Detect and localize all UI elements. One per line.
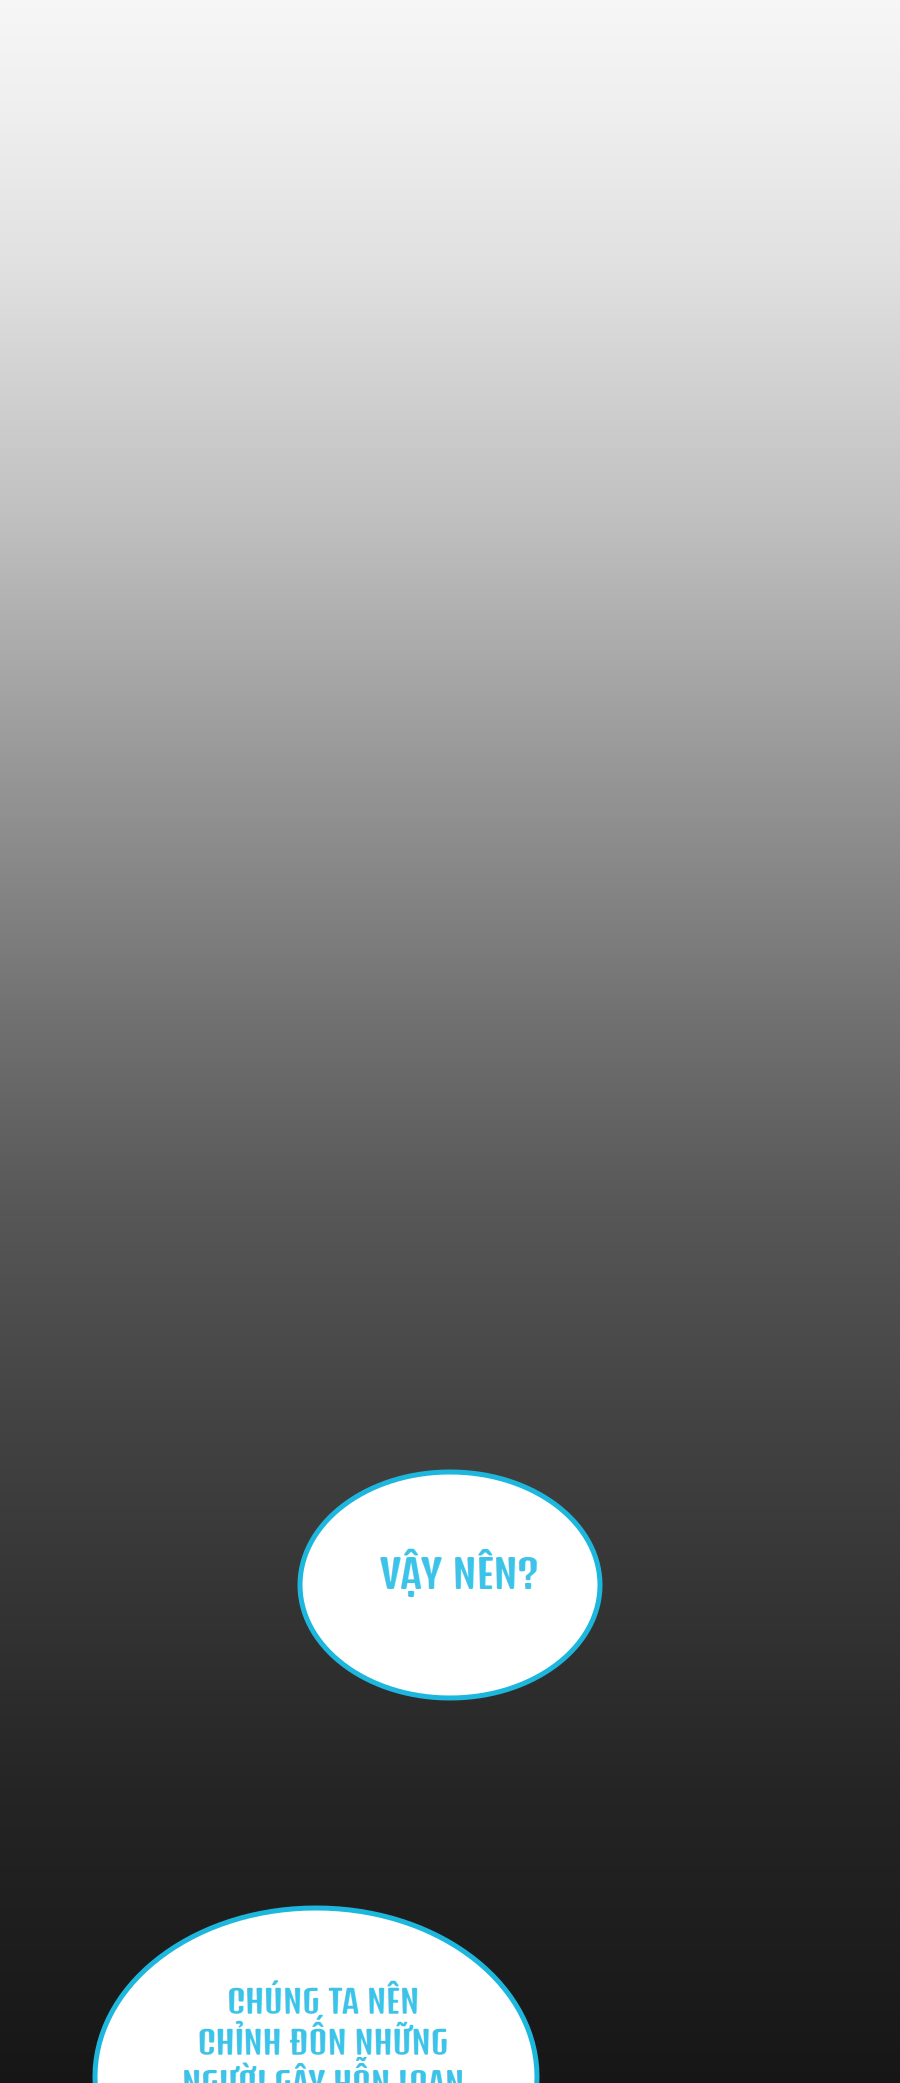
staticText: CHÚNG TA NÊN [227,1981,419,2020]
staticText: NGƯỜI GÂY HỖN LOẠN [182,2064,464,2083]
staticText: CHỈNH ĐỐN NHỮNG [197,2022,448,2062]
staticText: VẬY NÊN? [379,1548,538,1598]
